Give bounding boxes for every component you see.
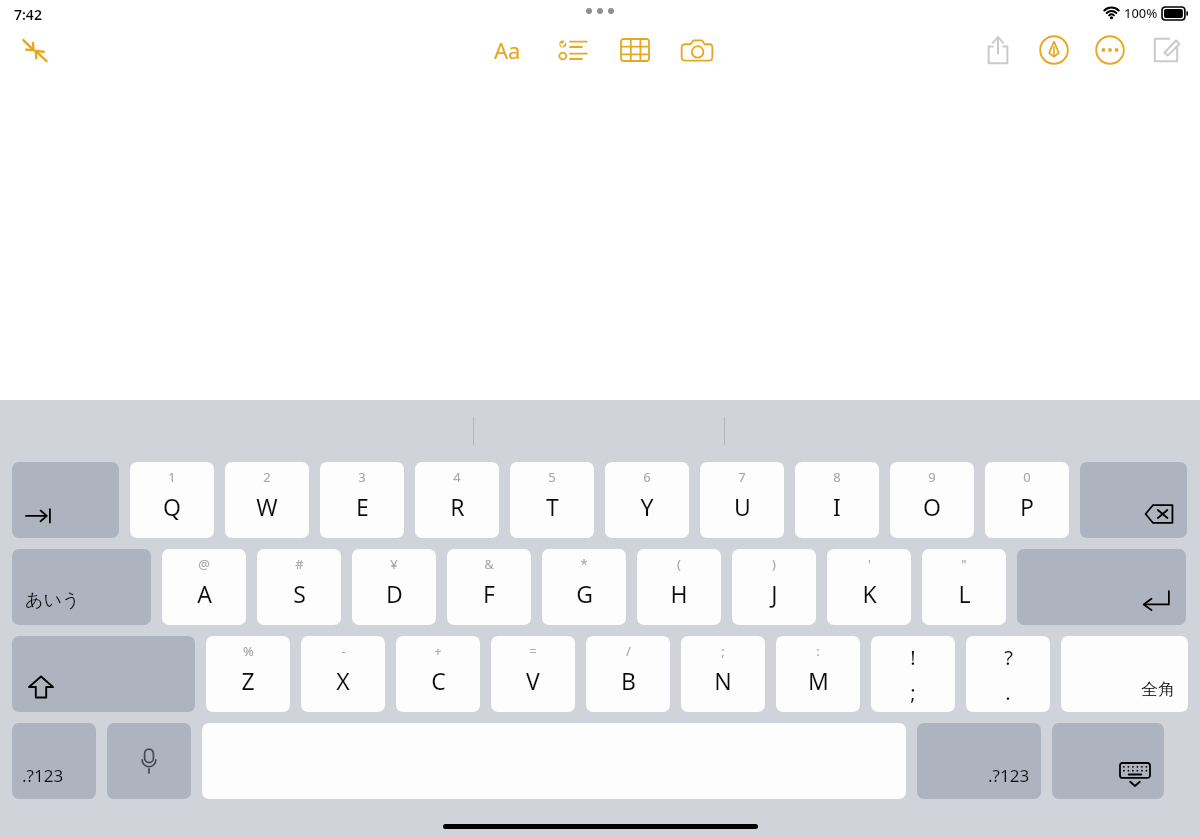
staticText: ¥ (390, 555, 398, 573)
staticText: X (336, 665, 350, 696)
staticText: + (434, 642, 442, 660)
staticText: * (580, 555, 588, 573)
button[interactable]: ) (732, 549, 816, 625)
button[interactable]: Table (615, 30, 655, 70)
staticText: A (197, 578, 212, 609)
button[interactable]: 全角 (1061, 636, 1188, 712)
staticText: & (484, 555, 494, 573)
staticText: E (356, 491, 369, 522)
button[interactable]: Dictation (107, 723, 191, 799)
button[interactable]: 3 (320, 462, 404, 538)
button[interactable]: ! (871, 636, 955, 712)
staticText: ; (910, 679, 916, 706)
staticText: U (734, 491, 751, 522)
staticText: 9 (928, 468, 936, 486)
button[interactable]: # (257, 549, 341, 625)
button[interactable]: & (447, 549, 531, 625)
staticText: @ (198, 555, 210, 573)
staticText: B (621, 665, 636, 696)
button[interactable]: Shift (12, 636, 195, 712)
staticText: V (526, 665, 540, 696)
staticText: # (295, 555, 304, 573)
staticText: 7:42 (14, 5, 42, 24)
staticText: .?123 (988, 764, 1030, 787)
staticText: L (958, 578, 971, 609)
staticText: 8 (833, 468, 841, 486)
button[interactable]: ; (681, 636, 765, 712)
button[interactable]: Checklist (553, 30, 593, 70)
button[interactable]: .?123 (12, 723, 96, 799)
button[interactable]: 1 (130, 462, 214, 538)
button[interactable]: Tab (12, 462, 119, 538)
staticText: Q (163, 491, 181, 522)
button[interactable]: Share (978, 30, 1018, 70)
staticText: 6 (643, 468, 651, 486)
button[interactable]: " (922, 549, 1006, 625)
button[interactable]: + (396, 636, 480, 712)
button[interactable]: ( (637, 549, 721, 625)
button[interactable]: ' (827, 549, 911, 625)
button[interactable]: - (301, 636, 385, 712)
button[interactable]: Aa (483, 30, 531, 70)
staticText: % (243, 642, 254, 660)
button[interactable]: 5 (510, 462, 594, 538)
staticText: T (546, 491, 559, 522)
staticText: = (529, 642, 537, 660)
button[interactable]: Markup (1034, 30, 1074, 70)
staticText: C (431, 665, 446, 696)
staticText: ? (1004, 644, 1013, 671)
button[interactable]: % (206, 636, 290, 712)
button[interactable]: / (586, 636, 670, 712)
button[interactable]: Return (1017, 549, 1186, 625)
staticText: 4 (453, 468, 461, 486)
button[interactable]: 4 (415, 462, 499, 538)
button[interactable]: @ (162, 549, 246, 625)
staticText: O (923, 491, 941, 522)
staticText: 2 (263, 468, 271, 486)
button[interactable]: Backspace (1080, 462, 1187, 538)
button[interactable]: Collapse (18, 34, 52, 68)
staticText: あいう (25, 589, 81, 612)
staticText: Y (640, 491, 654, 522)
staticText: I (833, 491, 841, 522)
button[interactable]: 8 (795, 462, 879, 538)
staticText: ( (677, 555, 681, 573)
button[interactable]: 9 (890, 462, 974, 538)
button[interactable]: Hide Keyboard (1052, 723, 1164, 799)
button[interactable]: Camera (677, 30, 717, 70)
staticText: 0 (1023, 468, 1031, 486)
staticText: S (293, 578, 306, 609)
button[interactable]: ? (966, 636, 1050, 712)
staticText: H (670, 578, 688, 609)
staticText: W (256, 491, 278, 522)
staticText: .?123 (22, 764, 64, 787)
button[interactable]: 2 (225, 462, 309, 538)
staticText: " (961, 555, 967, 573)
staticText: / (626, 642, 631, 660)
button[interactable]: = (491, 636, 575, 712)
staticText: Aa (494, 35, 521, 65)
staticText: : (816, 642, 820, 660)
button[interactable]: : (776, 636, 860, 712)
button[interactable]: More (1090, 30, 1130, 70)
staticText: ; (721, 642, 725, 660)
staticText: - (341, 642, 346, 660)
button[interactable]: New Note (1146, 30, 1186, 70)
button[interactable]: .?123 (917, 723, 1041, 799)
staticText: 7 (738, 468, 746, 486)
staticText: R (450, 491, 465, 522)
staticText: G (576, 578, 593, 609)
staticText: . (1005, 679, 1011, 706)
staticText: 全角 (1141, 679, 1175, 700)
button[interactable]: あいう (12, 549, 151, 625)
staticText: Z (241, 665, 255, 696)
button[interactable]: 0 (985, 462, 1069, 538)
staticText: M (808, 665, 829, 696)
button[interactable]: 7 (700, 462, 784, 538)
button[interactable]: 6 (605, 462, 689, 538)
button[interactable]: * (542, 549, 626, 625)
staticText: K (862, 578, 877, 609)
button[interactable]: ¥ (352, 549, 436, 625)
staticText: D (386, 578, 403, 609)
